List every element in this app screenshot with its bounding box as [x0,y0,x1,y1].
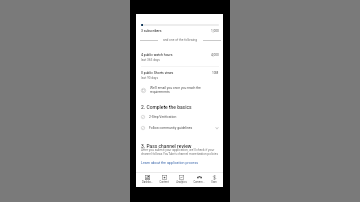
button[interactable]: Content [159,175,169,184]
staticText: 2. Complete the basics [141,104,192,110]
button[interactable]: Dashbo [142,175,153,184]
other: Analytics [179,175,184,180]
staticText: 3 subscribers [141,29,211,33]
staticText: channel follows YouTube's channel moneti… [141,152,218,156]
staticText: 10M [212,71,219,75]
staticText: 4,000 [211,53,219,57]
button[interactable]: Follow community guidelines [141,126,219,130]
staticText: Analytics [176,181,187,184]
staticText: Comme... [193,181,205,184]
button[interactable]: Earn [211,175,217,184]
staticText: Content [159,181,169,184]
staticText: last 90 days [141,76,159,80]
staticText: 4 public watch hours [141,53,211,57]
other: Email notification [141,88,146,93]
staticText: 0 public Shorts views [141,71,212,75]
other: Earn [212,175,217,180]
staticText: and one of the following [163,38,198,42]
other: Content [162,175,167,180]
staticText: We'll email you once you reach the requi… [150,86,201,94]
other: Dashbo [145,175,150,180]
staticText: 1,000 [211,29,219,33]
staticText: Follow community guidelines [149,126,215,130]
staticText: 3. Pass channel review [141,143,192,149]
staticText: 2-Step Verification [149,115,177,119]
staticText: last 365 days [141,58,160,62]
button[interactable]: Analytics [176,175,187,184]
button[interactable]: Email notification [141,86,219,94]
staticText: Earn [211,181,217,184]
button[interactable]: 2-Step Verification [141,115,219,119]
button[interactable]: Comme [193,175,205,184]
other: Comme [197,175,202,180]
staticText: After you submit your application, we'll… [141,148,215,152]
staticText: Dashbo... [142,181,153,184]
button[interactable]: Learn about the application process [141,161,199,165]
